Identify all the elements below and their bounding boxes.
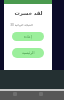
staticText: النتيجة النهائية 30 (10, 23, 33, 27)
staticText: إعادة (24, 35, 32, 39)
button[interactable]: إعادة (12, 32, 44, 41)
button[interactable]: الرئيسية (12, 48, 44, 58)
staticText: لقد خسرت (14, 9, 43, 16)
staticText: الرئيسية (22, 51, 35, 55)
